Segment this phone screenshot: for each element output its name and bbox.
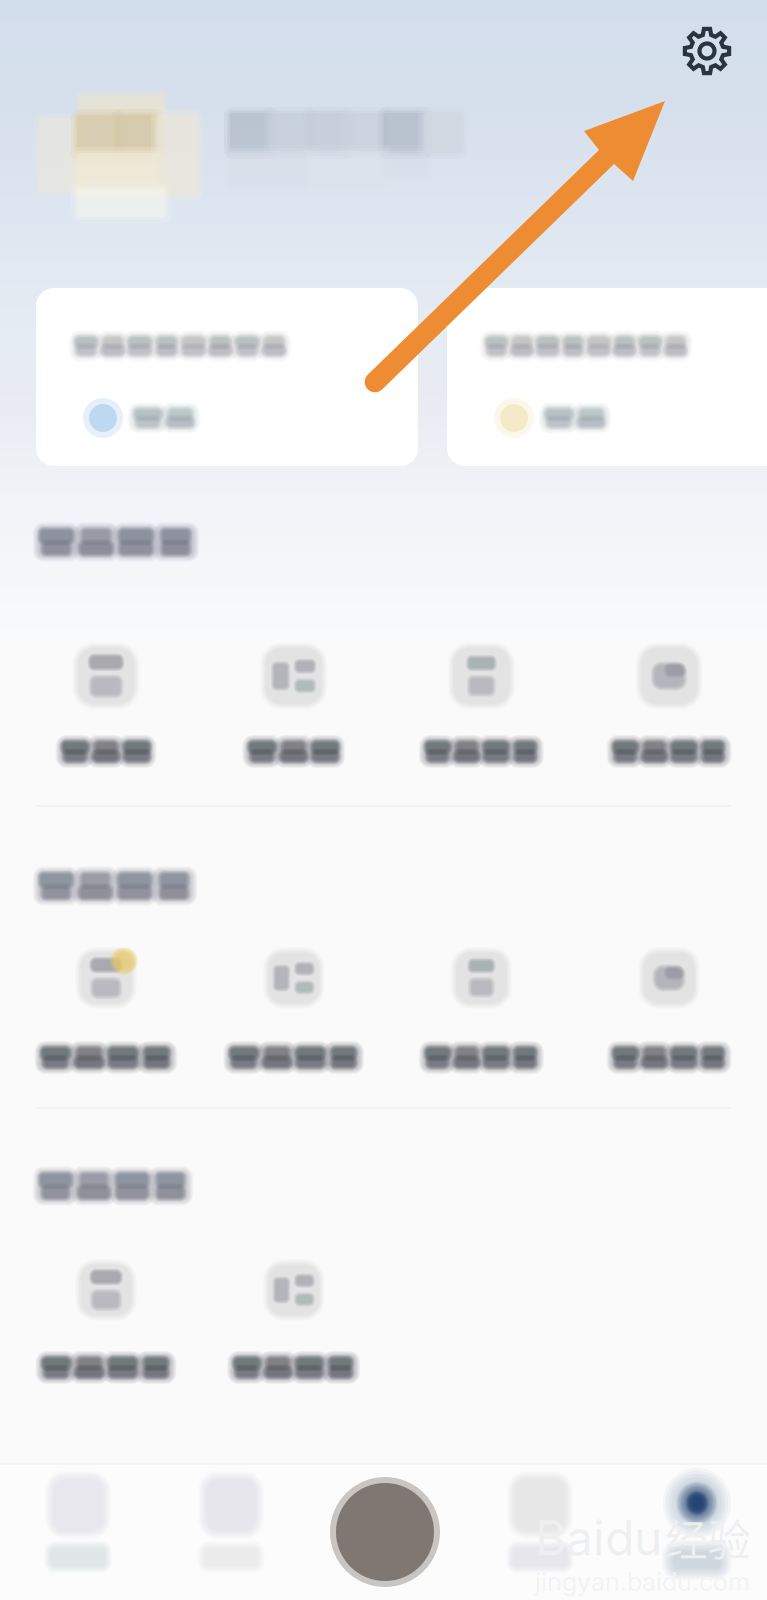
- button[interactable]: Home: [13, 1470, 143, 1574]
- staticText: jingyan.baidu.com: [535, 1567, 750, 1597]
- button[interactable]: Profile: [632, 1468, 762, 1572]
- button[interactable]: [200, 945, 387, 1078]
- button[interactable]: [447, 288, 767, 466]
- staticText: 经验: [665, 1507, 751, 1569]
- button[interactable]: [12, 1257, 200, 1388]
- button[interactable]: Settings: [663, 7, 751, 95]
- button[interactable]: [387, 945, 575, 1078]
- button[interactable]: Discover: [166, 1470, 296, 1574]
- button[interactable]: [387, 640, 575, 772]
- button[interactable]: [12, 945, 200, 1078]
- staticText: Baidu: [535, 1509, 662, 1567]
- button[interactable]: [200, 1257, 387, 1388]
- button[interactable]: Messages: [475, 1470, 605, 1574]
- button[interactable]: [200, 640, 387, 772]
- button[interactable]: [575, 640, 763, 772]
- button[interactable]: [575, 945, 763, 1078]
- button[interactable]: Create: [321, 1468, 449, 1596]
- button[interactable]: [12, 640, 200, 772]
- button[interactable]: [36, 288, 418, 466]
